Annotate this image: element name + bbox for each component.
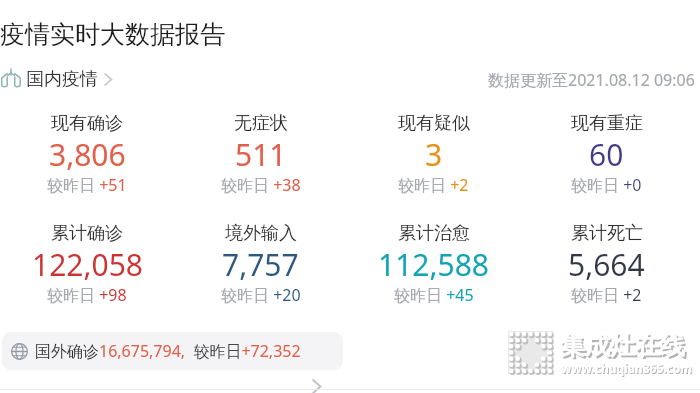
- button[interactable]: 累计确诊: [0, 222, 174, 308]
- staticText: 较昨日 +51: [47, 174, 127, 196]
- staticText: 112,588: [378, 244, 489, 285]
- button[interactable]: 累计治愈: [347, 222, 520, 308]
- staticText: www.chuqian365.com: [562, 361, 694, 377]
- staticText: 7,757: [222, 244, 299, 285]
- button[interactable]: 现有确诊: [0, 112, 174, 198]
- staticText: 较昨日 +0: [571, 174, 642, 196]
- button[interactable]: 现有疑似: [347, 112, 520, 198]
- staticText: 较昨日 +2: [398, 174, 469, 196]
- staticText: 511: [235, 134, 287, 175]
- staticText: 累计确诊: [51, 222, 123, 245]
- staticText: 较昨日 +98: [47, 284, 127, 306]
- staticText: 5,664: [568, 244, 645, 285]
- staticText: www.chuqian365.com: [561, 360, 693, 376]
- staticText: 集成灶在线: [560, 330, 685, 361]
- button[interactable]: 累计死亡: [520, 222, 693, 308]
- staticText: 现有确诊: [51, 112, 123, 135]
- staticText: 集成灶在线: [562, 332, 687, 363]
- staticText: 数据更新至2021.08.12 09:06: [488, 69, 695, 91]
- staticText: 无症状: [234, 112, 288, 135]
- staticText: 国外确诊16,675,794, 较昨日+72,352: [35, 340, 301, 362]
- staticText: 较昨日 +45: [394, 284, 474, 306]
- button[interactable]: 无症状: [174, 112, 347, 198]
- button[interactable]: 现有重症: [520, 112, 693, 198]
- other: 国内疫情: [0, 68, 22, 87]
- staticText: 122,058: [32, 244, 143, 285]
- button[interactable]: 境外输入: [174, 222, 347, 308]
- staticText: 60: [589, 134, 624, 175]
- staticText: 累计治愈: [398, 222, 470, 245]
- staticText: 境外输入: [225, 222, 297, 245]
- button[interactable]: 国外确诊: [2, 332, 343, 370]
- staticText: 现有重症: [571, 112, 643, 135]
- staticText: 3: [425, 134, 443, 175]
- other: 国外确诊: [11, 343, 28, 360]
- button[interactable]: 国内疫情: [0, 68, 113, 91]
- staticText: 较昨日 +20: [221, 284, 301, 306]
- staticText: 较昨日 +38: [221, 174, 301, 196]
- staticText: 较昨日 +2: [571, 284, 642, 306]
- staticText: 累计死亡: [571, 222, 643, 245]
- staticText: 3,806: [49, 134, 126, 175]
- staticText: 国内疫情: [26, 68, 98, 91]
- staticText: 疫情实时大数据报告: [0, 19, 225, 50]
- staticText: 现有疑似: [398, 112, 470, 135]
